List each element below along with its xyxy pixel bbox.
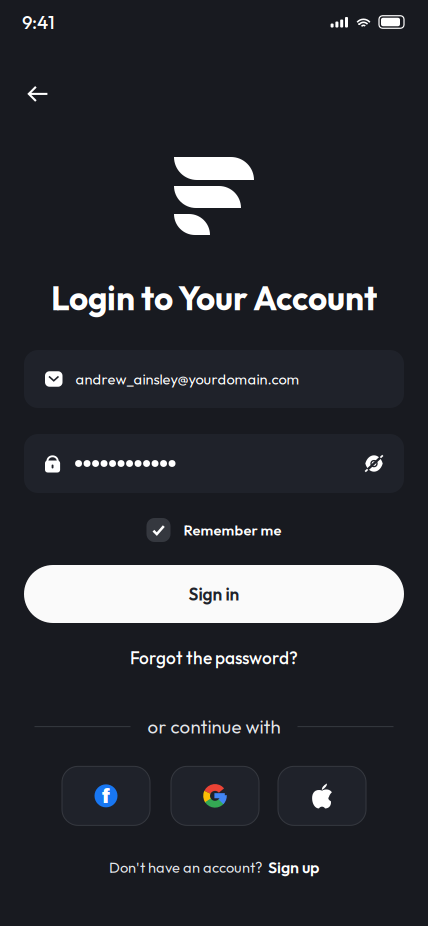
button[interactable]: Sign up <box>268 857 319 878</box>
staticText: Remember me <box>183 521 281 539</box>
staticText: f <box>102 785 110 807</box>
staticText: Don't have an account? <box>109 858 262 877</box>
button[interactable]: Show password <box>365 456 383 471</box>
staticText: Forgot the password? <box>130 647 298 669</box>
button[interactable]: Remember me <box>146 518 281 542</box>
staticText: Sign up <box>268 857 319 878</box>
staticText: 9:41 <box>22 10 55 34</box>
staticText: or continue with <box>147 715 280 738</box>
staticText: Sign in <box>188 583 239 605</box>
button[interactable]: Continue with Facebook <box>62 766 150 825</box>
staticText: Login to Your Account <box>51 277 377 319</box>
button[interactable]: Forgot the password? <box>130 647 298 669</box>
staticText: andrew_ainsley@yourdomain.com <box>75 370 299 388</box>
button[interactable]: Continue with Google <box>171 766 259 825</box>
button[interactable]: Back <box>13 69 63 119</box>
button[interactable]: Sign in <box>0 565 428 623</box>
button[interactable]: Continue with Apple <box>278 766 366 825</box>
